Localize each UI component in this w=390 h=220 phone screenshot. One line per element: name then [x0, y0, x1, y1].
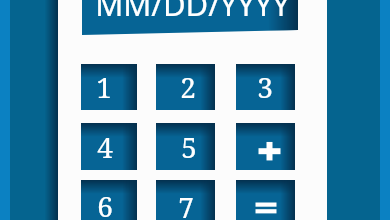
button[interactable]: 7 — [156, 180, 215, 220]
button[interactable]: 6 — [81, 180, 137, 220]
button[interactable]: Plus — [236, 123, 295, 170]
staticText: 2 — [180, 68, 196, 106]
staticText: 5 — [181, 128, 197, 166]
button[interactable]: 4 — [81, 123, 137, 170]
button[interactable]: Equals — [236, 180, 295, 220]
button[interactable]: 5 — [156, 123, 215, 170]
button[interactable]: 3 — [236, 64, 295, 110]
staticText: 1 — [96, 68, 112, 106]
staticText: 6 — [97, 187, 113, 220]
staticText: MM/DD/YYYY — [95, 0, 290, 25]
button[interactable]: 1 — [81, 64, 137, 110]
button[interactable]: Date input — [82, 0, 298, 35]
staticText: 3 — [257, 68, 273, 106]
staticText: 4 — [97, 128, 113, 166]
staticText: 7 — [178, 188, 194, 220]
button[interactable]: 2 — [156, 64, 215, 110]
